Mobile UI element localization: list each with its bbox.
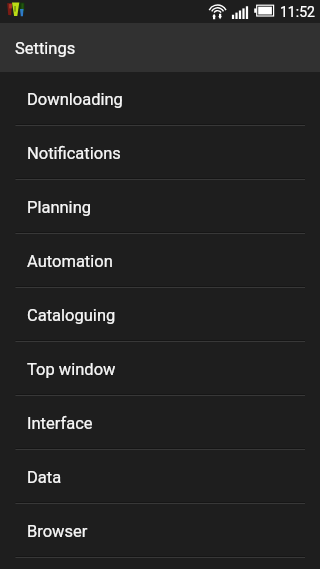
button[interactable]: Downloading (0, 72, 320, 126)
button[interactable]: Browser (0, 504, 320, 558)
button[interactable]: Cataloguing (0, 288, 320, 342)
staticText: Settings (15, 39, 76, 58)
staticText: Top window (27, 360, 116, 379)
staticText: Automation (27, 252, 113, 271)
staticText: Browser (27, 522, 88, 541)
button[interactable]: Interface (0, 396, 320, 450)
staticText: Downloading (27, 90, 123, 109)
staticText: Planning (27, 198, 92, 217)
staticText: 11:52 (280, 4, 315, 20)
button[interactable]: Notifications (0, 126, 320, 180)
staticText: Data (27, 468, 62, 487)
staticText: Notifications (27, 144, 121, 163)
staticText: Cataloguing (27, 306, 116, 325)
button[interactable]: Planning (0, 180, 320, 234)
button[interactable]: Top window (0, 342, 320, 396)
button[interactable]: Data (0, 450, 320, 504)
staticText: Interface (27, 414, 93, 433)
button[interactable]: Automation (0, 234, 320, 288)
